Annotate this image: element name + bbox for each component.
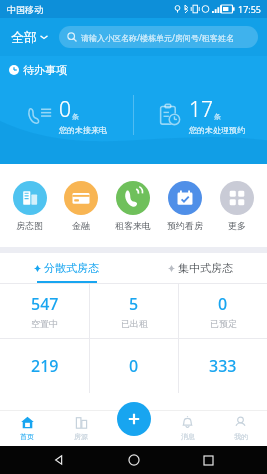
button[interactable]: 更多 bbox=[211, 179, 263, 233]
staticText: 5 bbox=[129, 293, 139, 315]
staticText: 首页 bbox=[20, 432, 34, 441]
staticText: 我的 bbox=[234, 432, 248, 441]
button[interactable]: 17 bbox=[134, 77, 267, 152]
button[interactable]: 我的 bbox=[214, 410, 267, 446]
button[interactable]: 0 bbox=[179, 284, 267, 338]
button[interactable]: 全部 bbox=[9, 26, 50, 48]
staticText: 547 bbox=[31, 293, 59, 315]
button[interactable]: 请输入小区名称/楼栋单元/房间号/租客姓名 bbox=[59, 26, 258, 48]
staticText: 空置中 bbox=[31, 318, 58, 329]
staticText: 219 bbox=[31, 355, 59, 377]
staticText: 待办事项 bbox=[23, 63, 67, 77]
staticText: 请输入小区名称/楼栋单元/房间号/租客姓名 bbox=[81, 32, 234, 43]
staticText: 条 bbox=[72, 112, 79, 121]
button[interactable]: Back bbox=[44, 446, 74, 474]
button[interactable]: 0 bbox=[0, 77, 133, 152]
button[interactable]: Add bbox=[117, 402, 151, 436]
button[interactable]: 0 bbox=[90, 339, 178, 393]
staticText: 房源 bbox=[74, 432, 88, 441]
button[interactable]: 房态图 bbox=[4, 179, 55, 233]
staticText: 0 bbox=[129, 355, 139, 377]
button[interactable]: 集中式房态 bbox=[133, 253, 267, 283]
staticText: 消息 bbox=[181, 432, 195, 441]
staticText: 已预定 bbox=[210, 318, 237, 329]
button[interactable]: Home bbox=[119, 446, 149, 474]
staticText: 租客来电 bbox=[115, 220, 151, 231]
staticText: 全部 bbox=[11, 29, 37, 45]
staticText: 房态图 bbox=[16, 220, 43, 231]
staticText: 17 bbox=[189, 95, 213, 124]
button[interactable]: 消息 bbox=[161, 410, 214, 446]
staticText: 分散式房态 bbox=[44, 261, 99, 275]
button[interactable]: 219 bbox=[0, 339, 89, 393]
staticText: 条 bbox=[214, 112, 221, 121]
button[interactable]: 预约看房 bbox=[159, 179, 211, 233]
staticText: 您的未接来电 bbox=[59, 125, 107, 135]
staticText: 17:55 bbox=[238, 3, 262, 15]
staticText: 您的未处理预约 bbox=[189, 125, 245, 135]
staticText: 更多 bbox=[228, 220, 246, 231]
staticText: 333 bbox=[209, 355, 237, 377]
button[interactable]: 分散式房态 bbox=[0, 253, 133, 283]
button[interactable]: 547 bbox=[0, 284, 89, 338]
button[interactable]: 金融 bbox=[55, 179, 107, 233]
staticText: 集中式房态 bbox=[178, 261, 233, 275]
button[interactable]: 5 bbox=[90, 284, 178, 338]
button[interactable]: Recents bbox=[193, 446, 223, 474]
button[interactable]: 首页 bbox=[0, 410, 54, 446]
staticText: 0 bbox=[59, 95, 71, 124]
staticText: 预约看房 bbox=[167, 220, 203, 231]
button[interactable]: 房源 bbox=[54, 410, 108, 446]
staticText: 0 bbox=[218, 293, 228, 315]
button[interactable]: 333 bbox=[179, 339, 267, 393]
staticText: 中国移动 bbox=[7, 4, 43, 15]
button[interactable]: 租客来电 bbox=[107, 179, 159, 233]
staticText: 金融 bbox=[72, 220, 90, 231]
staticText: 已出租 bbox=[121, 318, 148, 329]
